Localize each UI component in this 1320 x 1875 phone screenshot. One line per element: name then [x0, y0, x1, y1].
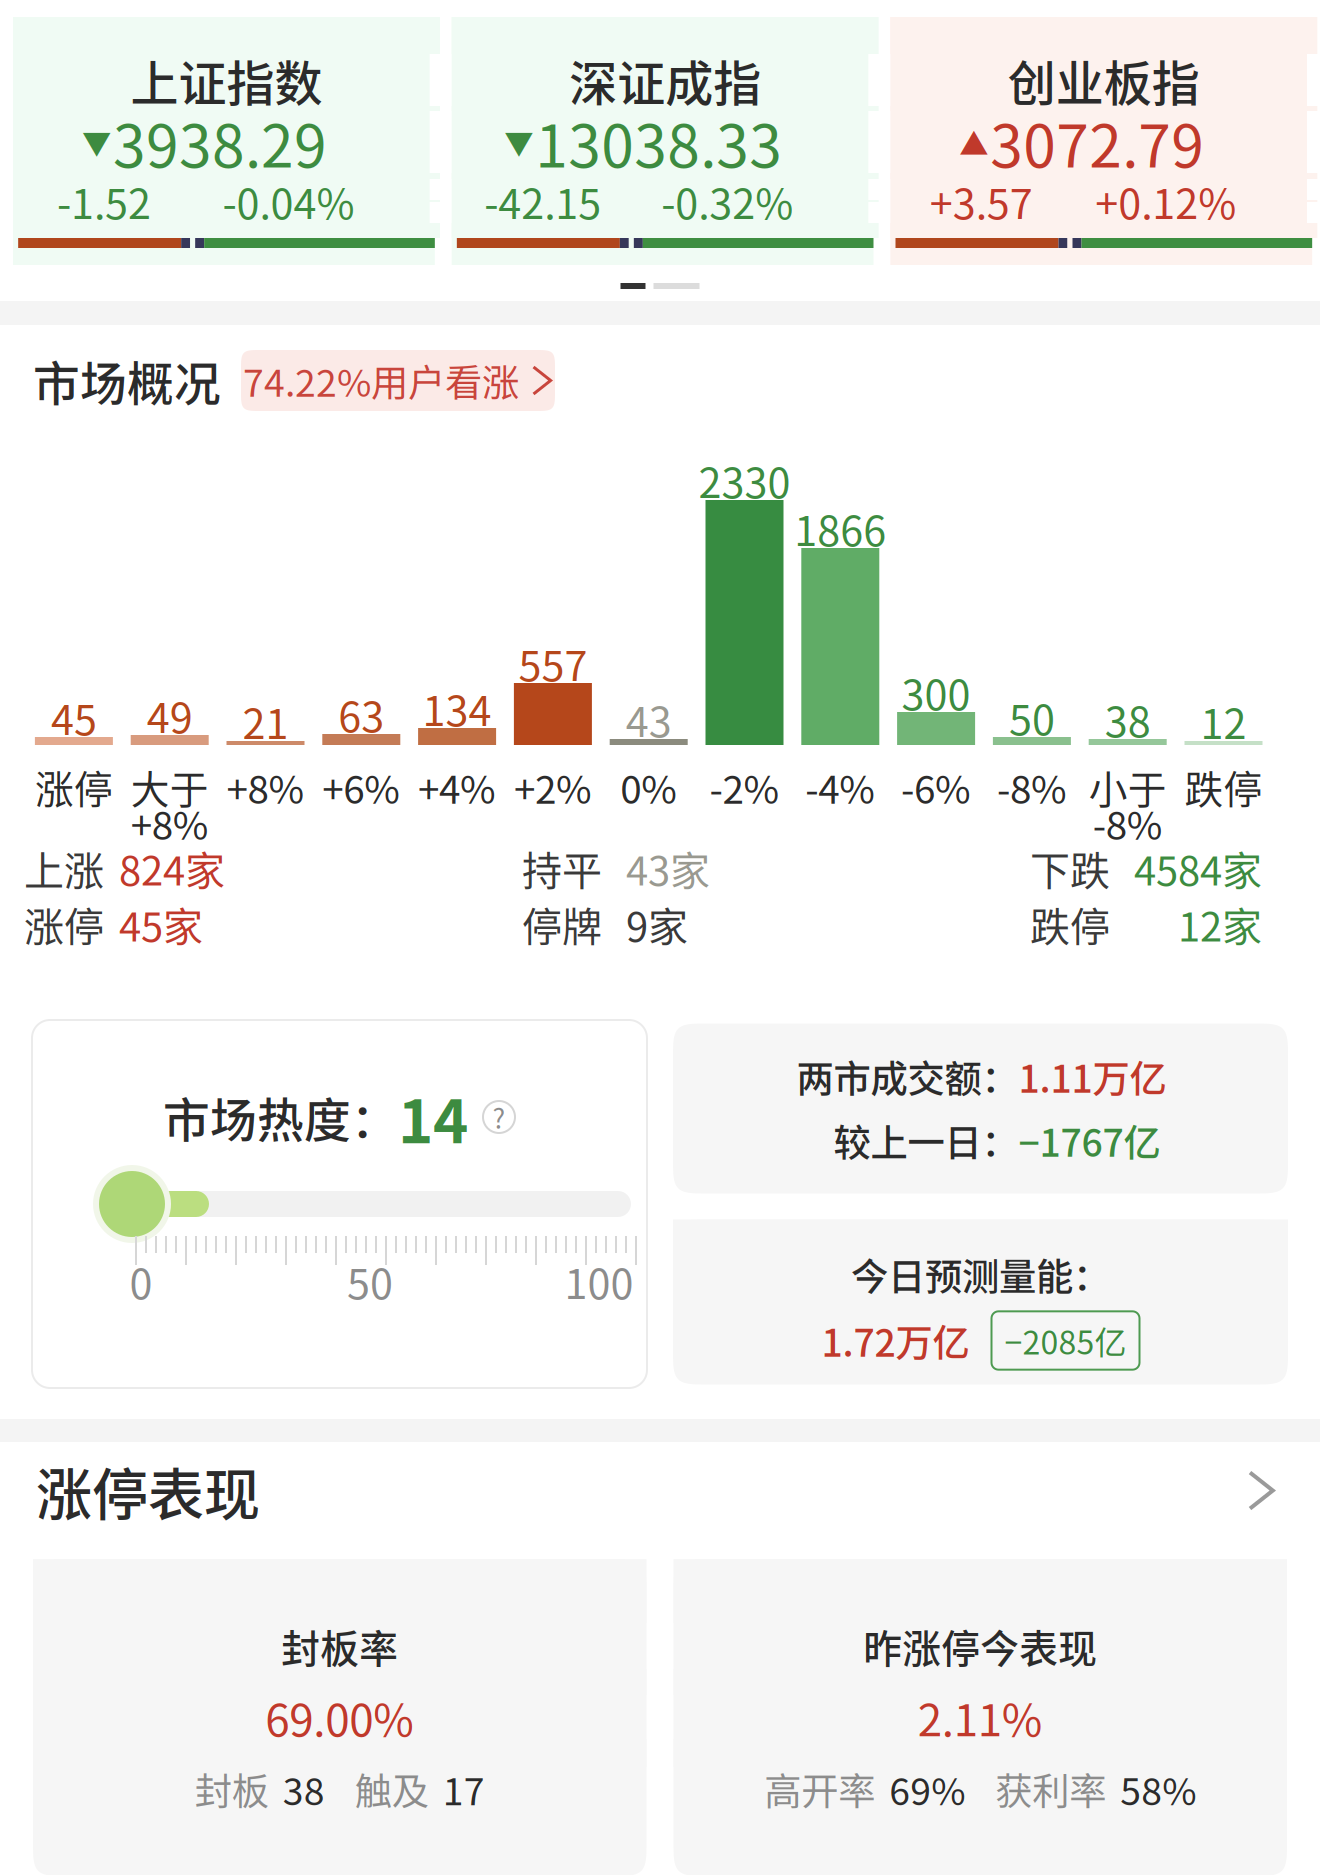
staticText: 9家 — [626, 895, 688, 953]
staticText: ▲ — [959, 121, 988, 163]
staticText: 封板率 — [281, 1618, 398, 1674]
button[interactable]: 查看涨停表现 — [1240, 1462, 1284, 1518]
staticText: 38 — [283, 1762, 325, 1816]
staticText: 38 — [1105, 689, 1151, 749]
staticText: 下跌 — [1030, 839, 1110, 897]
staticText: -4% — [805, 759, 875, 815]
staticText: 停牌 — [522, 895, 602, 953]
staticText: 1.11万亿 — [1018, 1049, 1166, 1103]
staticText: 1866 — [794, 498, 886, 558]
staticText: 50 — [1009, 687, 1055, 747]
staticText: 134 — [423, 678, 492, 738]
staticText: 触及 — [355, 1762, 429, 1816]
staticText: 74.22%用户看涨 — [243, 353, 519, 408]
staticText: 824家 — [119, 839, 225, 897]
staticText: 市场概况 — [33, 347, 221, 414]
staticText: 300 — [902, 662, 971, 722]
staticText: 45家 — [119, 895, 203, 953]
staticText: 12家 — [1178, 895, 1262, 953]
staticText: 0 — [129, 1251, 152, 1311]
staticText: 小于 — [1089, 759, 1167, 815]
staticText: -6% — [901, 759, 971, 815]
staticText: ▼ — [504, 121, 533, 163]
button[interactable]: 昨涨停今表现 — [673, 1559, 1287, 1875]
staticText: 跌停 — [1030, 895, 1110, 953]
staticText: 58% — [1120, 1762, 1196, 1816]
staticText: +8% — [131, 795, 209, 851]
staticText: 21 — [242, 691, 288, 751]
staticText: 100 — [564, 1251, 633, 1311]
staticText: 13038.33 — [535, 99, 782, 184]
staticText: +4% — [418, 759, 496, 815]
staticText: -8% — [997, 759, 1067, 815]
button[interactable]: 上证指数 — [13, 17, 430, 265]
staticText: 今日预测量能： — [851, 1247, 1110, 1302]
staticText: ▼ — [82, 121, 111, 163]
button[interactable]: 封板率 — [33, 1559, 646, 1875]
staticText: 43 — [626, 689, 672, 749]
staticText: +6% — [322, 759, 400, 815]
staticText: 557 — [518, 633, 587, 693]
staticText: 封板 — [195, 1762, 269, 1816]
staticText: 跌停 — [1184, 759, 1262, 815]
staticText: 69% — [889, 1762, 965, 1816]
staticText: 上涨 — [24, 839, 104, 897]
staticText: −2085亿 — [1004, 1317, 1126, 1364]
staticText: 3072.79 — [990, 99, 1204, 184]
staticText: 4584家 — [1134, 839, 1262, 897]
staticText: 12 — [1200, 691, 1246, 751]
staticText: -2% — [709, 759, 779, 815]
staticText: 创业板指 — [1008, 45, 1200, 115]
staticText: +2% — [514, 759, 592, 815]
staticText: 17 — [443, 1762, 485, 1816]
staticText: -8% — [1093, 795, 1163, 851]
staticText: 获利率 — [995, 1762, 1106, 1816]
staticText: 1.72万亿 — [821, 1313, 969, 1368]
staticText: 63 — [338, 684, 384, 744]
staticText: 两市成交额： — [796, 1049, 1018, 1103]
staticText: 高开率 — [764, 1762, 875, 1816]
staticText: 大于 — [131, 759, 209, 815]
staticText: 涨停 — [24, 895, 104, 953]
staticText: 49 — [147, 685, 193, 745]
staticText: ? — [492, 1098, 505, 1136]
button[interactable]: 深证成指 — [452, 17, 868, 265]
staticText: 较上一日： — [833, 1113, 1018, 1168]
staticText: −1767亿 — [1018, 1113, 1160, 1168]
staticText: 0% — [620, 759, 677, 815]
button[interactable]: 74.22%用户看涨 — [241, 350, 555, 411]
staticText: +0.12% — [1095, 171, 1236, 231]
staticText: 69.00% — [265, 1685, 414, 1749]
staticText: 昨涨停今表现 — [863, 1618, 1097, 1674]
staticText: 涨停表现 — [36, 1450, 260, 1531]
button[interactable]: 创业板指 — [890, 17, 1307, 265]
staticText: 3938.29 — [113, 99, 327, 184]
staticText: 14 — [398, 1074, 468, 1160]
staticText: 持平 — [522, 839, 602, 897]
staticText: -0.32% — [661, 171, 793, 231]
staticText: 2330 — [698, 450, 790, 510]
staticText: 43家 — [626, 839, 710, 897]
staticText: -0.04% — [222, 171, 354, 231]
staticText: 2.11% — [918, 1685, 1043, 1749]
staticText: 市场热度： — [163, 1083, 398, 1151]
staticText: 45 — [51, 687, 97, 747]
staticText: -1.52 — [57, 171, 151, 231]
staticText: 上证指数 — [130, 45, 322, 115]
staticText: -42.15 — [484, 171, 601, 231]
staticText: +8% — [226, 759, 304, 815]
staticText: 涨停 — [35, 759, 113, 815]
staticText: 深证成指 — [569, 45, 761, 115]
staticText: +3.57 — [930, 171, 1033, 231]
staticText: 50 — [347, 1251, 393, 1311]
